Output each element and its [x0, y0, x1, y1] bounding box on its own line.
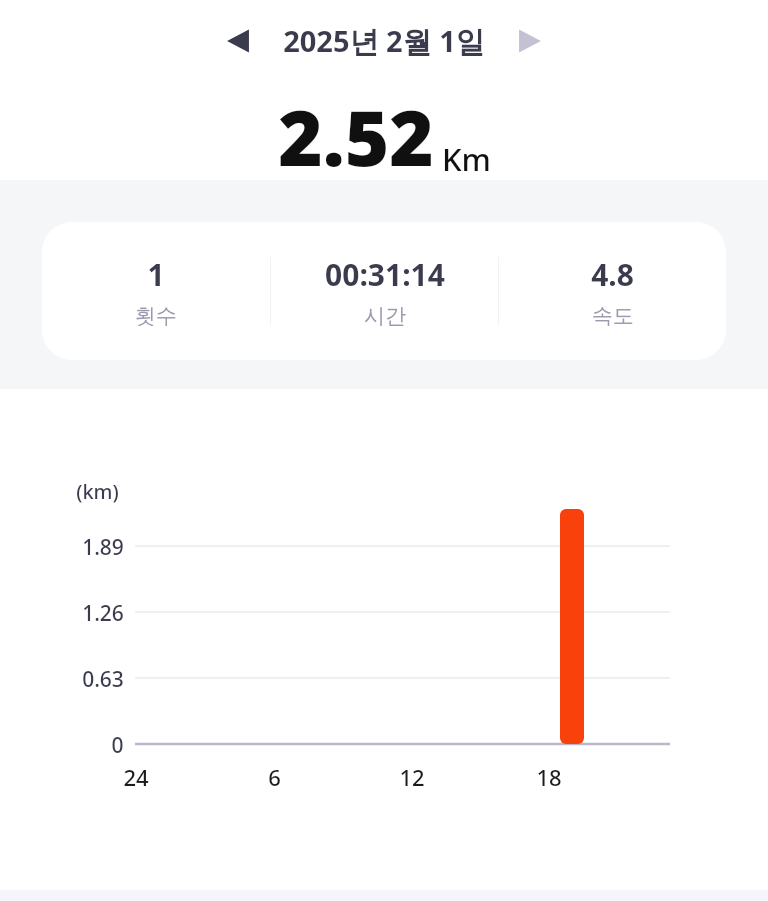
- staticText: 1.89: [82, 533, 124, 562]
- staticText: 18: [536, 762, 562, 792]
- button[interactable]: 1: [42, 222, 726, 360]
- staticText: 00:31:14: [325, 254, 445, 295]
- staticText: 1: [147, 254, 165, 295]
- staticText: (km): [76, 478, 119, 505]
- staticText: 24: [123, 762, 149, 792]
- staticText: 4.8: [591, 254, 634, 295]
- staticText: 6: [268, 762, 281, 792]
- button[interactable]: Previous day: [206, 9, 270, 73]
- staticText: 12: [399, 762, 425, 792]
- staticText: 0.63: [82, 665, 124, 694]
- staticText: Km: [442, 138, 491, 180]
- staticText: 0: [111, 731, 124, 760]
- staticText: 시간: [364, 303, 406, 329]
- staticText: 횟수: [135, 303, 177, 329]
- staticText: 1.26: [82, 599, 124, 628]
- button[interactable]: 2025년 2월 1일: [283, 21, 485, 61]
- staticText: 속도: [592, 303, 634, 329]
- staticText: 2.52: [278, 85, 434, 189]
- button[interactable]: Next day: [498, 9, 562, 73]
